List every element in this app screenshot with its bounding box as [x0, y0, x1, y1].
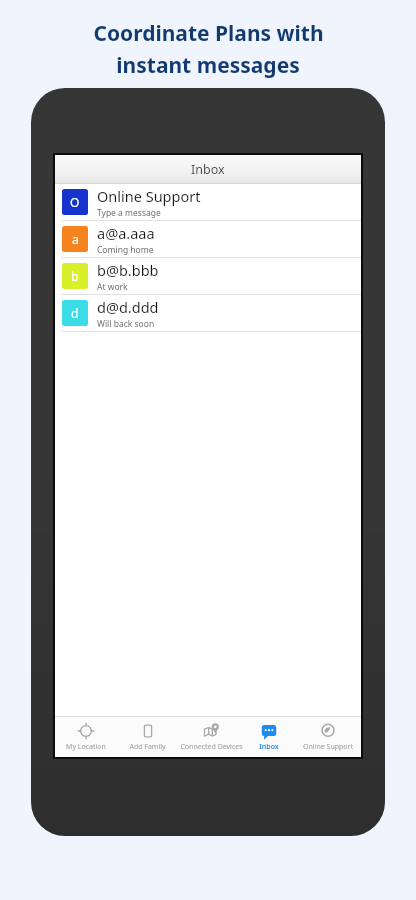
staticText: Connected Devices — [180, 742, 243, 752]
button[interactable]: Add Family — [117, 717, 178, 757]
button[interactable]: My Location — [55, 717, 117, 757]
staticText: My Location — [66, 742, 106, 752]
staticText: Coming home — [97, 244, 154, 256]
staticText: Online Support — [97, 186, 201, 206]
staticText: b@b.bbb — [97, 260, 159, 280]
button[interactable]: Connected Devices — [178, 717, 244, 757]
staticText: instant messages — [116, 51, 300, 80]
button[interactable]: b — [55, 258, 361, 294]
staticText: Inbox — [191, 161, 225, 178]
staticText: Coordinate Plans with — [93, 19, 324, 48]
staticText: Online Support — [303, 742, 353, 752]
staticText: d — [71, 305, 79, 321]
button[interactable]: O — [55, 184, 361, 220]
button[interactable]: Online Support — [294, 717, 361, 757]
staticText: O — [70, 194, 80, 210]
staticText: Add Family — [129, 742, 166, 752]
staticText: Inbox — [259, 742, 279, 752]
button[interactable]: d — [55, 295, 361, 331]
button[interactable]: Inbox — [244, 717, 294, 757]
staticText: At work — [97, 281, 128, 293]
staticText: a — [72, 231, 79, 247]
staticText: d@d.ddd — [97, 297, 159, 317]
staticText: Type a message — [97, 207, 161, 219]
staticText: Will back soon — [97, 318, 155, 330]
button[interactable]: a — [55, 221, 361, 257]
staticText: b — [71, 268, 79, 284]
staticText: a@a.aaa — [97, 223, 155, 243]
